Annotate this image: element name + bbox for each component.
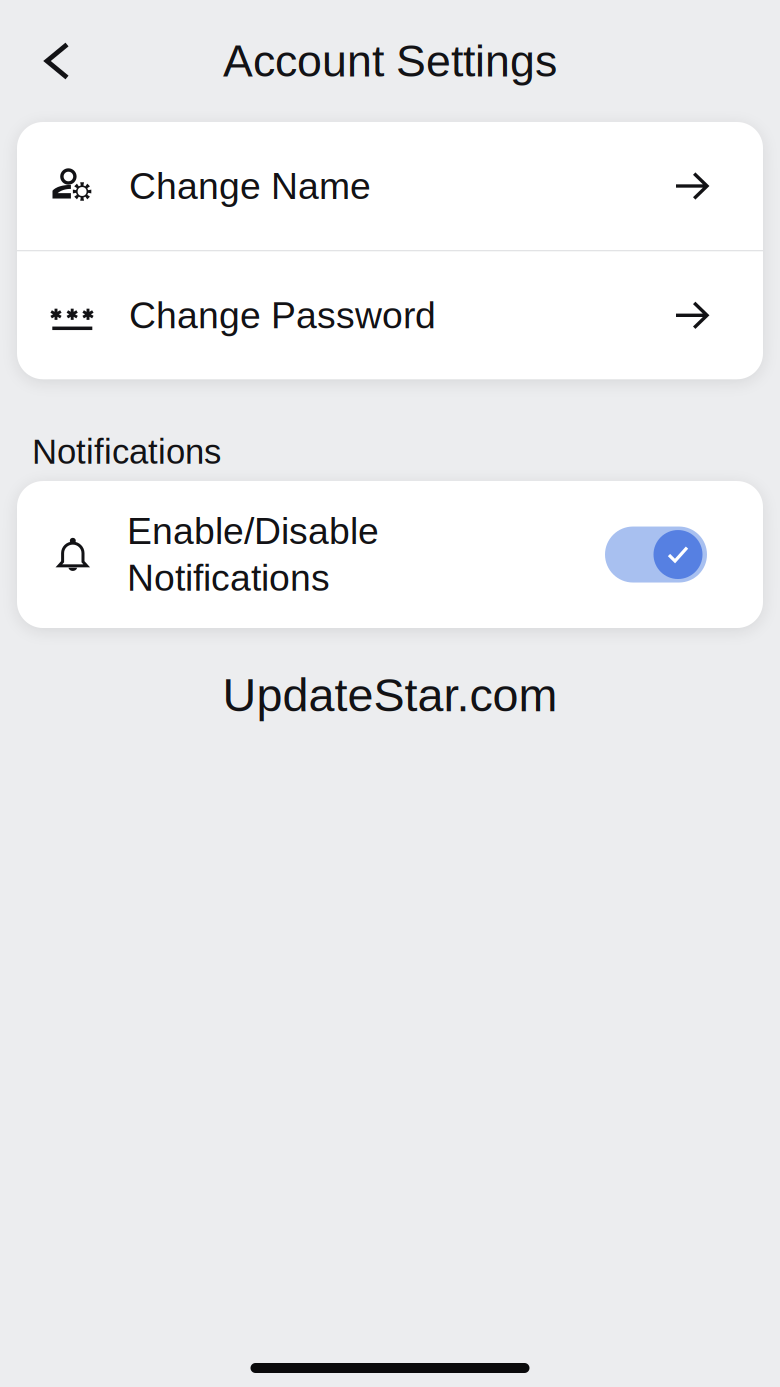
staticText: Notifications [32, 432, 221, 471]
staticText: Change Name [129, 165, 371, 207]
staticText: UpdateStar.com [222, 669, 557, 721]
staticText: Notifications [127, 557, 330, 599]
button[interactable]: Enable/Disable [17, 481, 763, 628]
staticText: Enable/Disable [127, 510, 379, 552]
staticText: Change Password [129, 294, 436, 336]
button[interactable]: Back [26, 30, 88, 92]
button[interactable]: Change Name [17, 122, 763, 250]
button[interactable]: Change Password [17, 251, 763, 379]
staticText: Account Settings [223, 36, 557, 86]
